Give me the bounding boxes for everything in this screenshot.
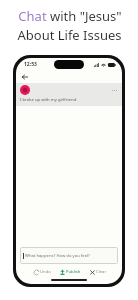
button[interactable]: Publish [59, 268, 82, 276]
button[interactable]: What happens? How do you feel? [20, 247, 118, 264]
staticText: 12:53 [24, 61, 37, 68]
button[interactable]: Clear [89, 268, 108, 276]
staticText: Clear [96, 269, 107, 275]
staticText: Publish [66, 269, 81, 275]
staticText: About Life Issues [17, 26, 122, 44]
button[interactable]: Back [20, 72, 30, 82]
button[interactable]: More options [109, 85, 119, 95]
staticText: Chat with "Jesus" [18, 7, 122, 25]
staticText: Undo [40, 269, 51, 275]
button[interactable]: Undo [33, 268, 52, 276]
staticText: I broke up with my girlfriend. [20, 97, 78, 103]
button[interactable]: Profile avatar [20, 85, 30, 95]
staticText: What happens? How do you feel? [25, 253, 90, 259]
